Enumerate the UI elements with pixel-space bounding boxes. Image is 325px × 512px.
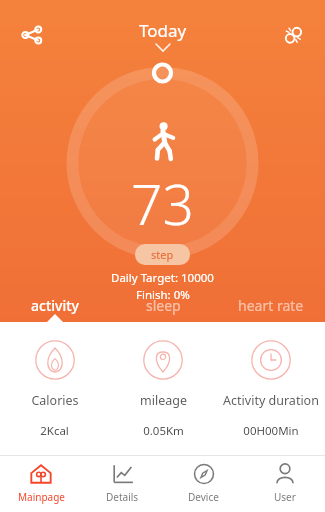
staticText: 00H00Min: [243, 423, 299, 439]
staticText: Calories: [31, 392, 79, 409]
staticText: Daily Target: 10000: [111, 270, 214, 286]
staticText: 0.05Km: [143, 423, 184, 439]
button[interactable]: Device: [163, 455, 244, 512]
staticText: activity: [31, 296, 79, 315]
staticText: 73: [131, 166, 194, 241]
staticText: Mainpage: [18, 490, 65, 504]
button[interactable]: step: [135, 244, 190, 265]
staticText: step: [151, 247, 174, 262]
staticText: Details: [106, 490, 139, 504]
button[interactable]: Today: [56, 0, 269, 70]
staticText: Device: [188, 490, 219, 504]
staticText: heart rate: [238, 296, 304, 315]
button[interactable]: Activity duration: [217, 336, 325, 443]
button[interactable]: Mainpage: [0, 455, 82, 512]
button[interactable]: sleep: [109, 288, 217, 322]
staticText: Finish: 0%: [136, 287, 190, 303]
button[interactable]: Share: [8, 11, 56, 59]
staticText: sleep: [146, 296, 181, 315]
button[interactable]: heart rate: [217, 288, 325, 322]
staticText: mileage: [140, 392, 187, 409]
button[interactable]: Details: [82, 455, 163, 512]
staticText: Today: [139, 19, 187, 42]
staticText: Activity duration: [223, 392, 319, 409]
button[interactable]: activity: [0, 288, 109, 322]
staticText: User: [274, 490, 296, 504]
button[interactable]: mileage: [109, 336, 217, 443]
button[interactable]: Calories: [0, 336, 109, 443]
button[interactable]: User: [244, 455, 325, 512]
button[interactable]: Disconnected device: [269, 11, 317, 59]
staticText: 2Kcal: [40, 423, 69, 439]
